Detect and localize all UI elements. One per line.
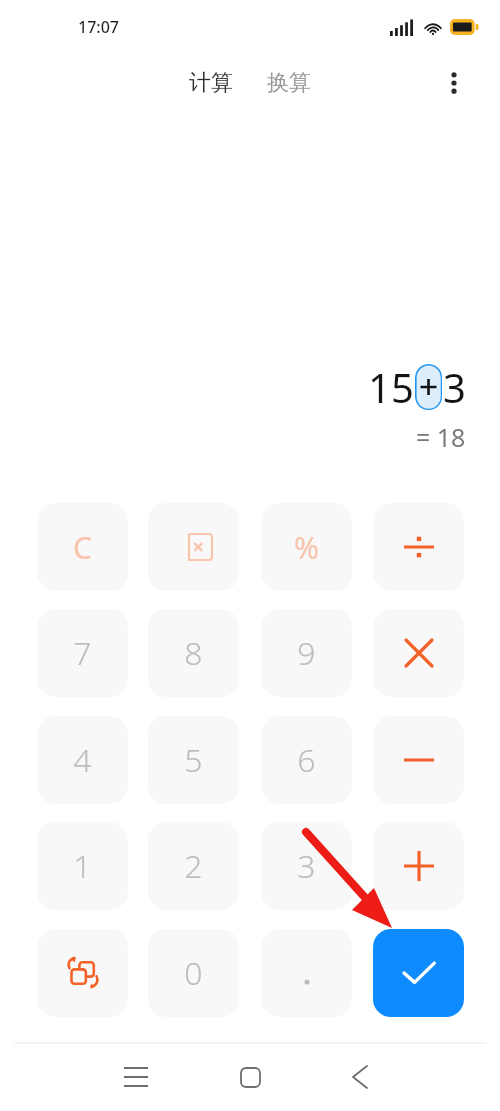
staticText: 8 (184, 631, 203, 675)
staticText: 2 (184, 844, 203, 888)
button[interactable]: Home (224, 1051, 276, 1103)
button[interactable]: Divide (373, 503, 464, 591)
button[interactable]: Recents (110, 1051, 162, 1103)
button[interactable]: Back (334, 1051, 386, 1103)
button[interactable]: 9 (261, 609, 352, 697)
button[interactable]: Equals (373, 929, 464, 1017)
staticText: 3 (443, 360, 466, 414)
button[interactable]: 1 (37, 822, 128, 910)
staticText: 1 (73, 844, 92, 888)
staticText: 15 (368, 360, 414, 414)
button[interactable]: 5 (148, 716, 239, 804)
button[interactable]: Multiply (373, 609, 464, 697)
staticText: = 18 (416, 420, 466, 454)
button[interactable]: Plus (373, 822, 464, 910)
button[interactable]: 4 (37, 716, 128, 804)
button[interactable]: Convert units (37, 929, 128, 1017)
staticText: 计算 (189, 69, 233, 97)
button[interactable]: 2 (148, 822, 239, 910)
button[interactable]: More options (434, 63, 474, 103)
button[interactable]: 计算 (183, 65, 239, 101)
staticText: 换算 (267, 69, 311, 97)
staticText: 17:07 (78, 16, 119, 38)
button[interactable]: 3 (261, 822, 352, 910)
button[interactable]: Clear (37, 503, 128, 591)
button[interactable]: Percent (261, 503, 352, 591)
staticText: 0 (184, 951, 203, 995)
staticText: 3 (297, 844, 316, 888)
button[interactable]: 7 (37, 609, 128, 697)
button[interactable]: 0 (148, 929, 239, 1017)
button[interactable]: 换算 (261, 65, 317, 101)
staticText: C (73, 527, 92, 568)
button[interactable]: Decimal point (261, 929, 352, 1017)
staticText: 6 (297, 738, 316, 782)
button[interactable]: 6 (261, 716, 352, 804)
button[interactable]: Backspace (148, 503, 239, 591)
staticText: 7 (73, 631, 92, 675)
staticText: 4 (73, 738, 92, 782)
staticText: 5 (184, 738, 203, 782)
button[interactable] (415, 364, 442, 410)
button[interactable]: 8 (148, 609, 239, 697)
staticText: 9 (297, 631, 316, 675)
staticText: % (294, 527, 319, 568)
button[interactable]: Minus (373, 716, 464, 804)
